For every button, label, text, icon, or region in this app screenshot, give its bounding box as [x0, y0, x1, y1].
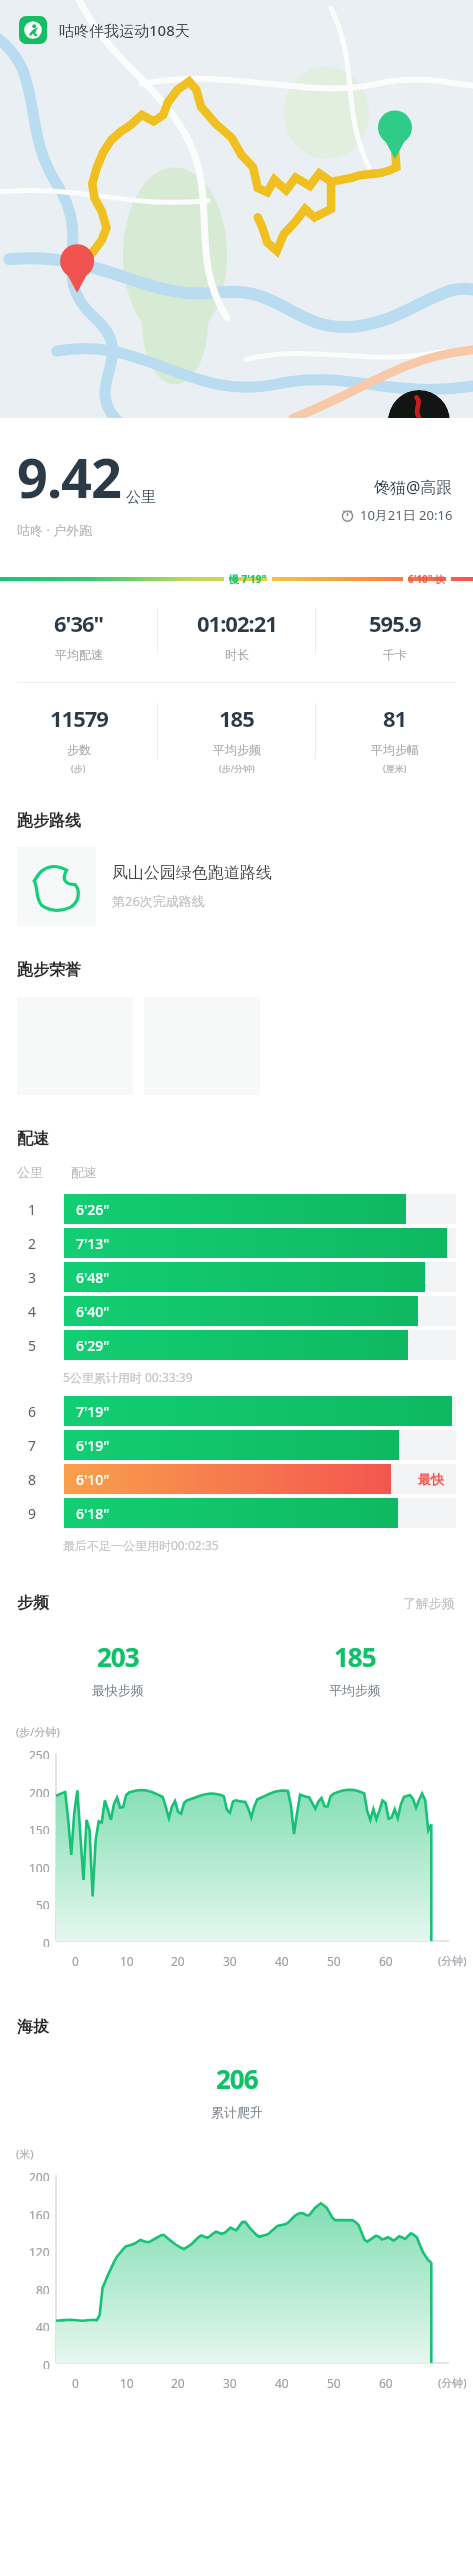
staticText: 第26次完成路线 [112, 892, 205, 910]
staticText: 馋猫@高跟 [374, 476, 453, 498]
staticText: (分钟) [438, 1953, 467, 1968]
staticText: 7'19" [76, 1402, 110, 1421]
staticText: 11579 [50, 703, 108, 733]
staticText: 了解步频 [403, 1595, 455, 1611]
button[interactable]: 了解步频 [403, 1595, 455, 1611]
staticText: 千卡 [383, 647, 407, 662]
staticText: 203 [97, 1639, 139, 1674]
staticText: 20 [171, 1953, 185, 1969]
staticText: 40 [275, 1953, 289, 1969]
staticText: 6'19" [76, 1436, 110, 1455]
staticText: (步/分钟) [219, 762, 255, 774]
staticText: 0 [43, 2357, 50, 2369]
staticText: 250 [29, 1747, 50, 1759]
staticText: 公里 [126, 488, 156, 507]
staticText: 595.9 [369, 608, 421, 638]
staticText: 30 [223, 2375, 237, 2391]
staticText: 最快 [418, 1471, 444, 1487]
staticText: 185 [334, 1639, 376, 1674]
staticText: 3 [28, 1268, 37, 1287]
staticText: 0 [72, 1953, 79, 1969]
staticText: 平均配速 [55, 647, 103, 662]
staticText: 6'26" [76, 1200, 110, 1219]
staticText: 0 [43, 1935, 50, 1947]
staticText: 20 [171, 2375, 185, 2391]
staticText: 7 [28, 1436, 37, 1455]
staticText: (米) [16, 2146, 34, 2161]
staticText: 6'18" [76, 1504, 110, 1523]
staticText: 累计爬升 [211, 2104, 263, 2120]
button[interactable]: 2 [17, 1226, 456, 1260]
staticText: 80 [36, 2282, 50, 2294]
staticText: 配速 [71, 1164, 97, 1180]
staticText: 30 [223, 1953, 237, 1969]
staticText: 81 [383, 703, 407, 733]
staticText: 咕咚 · 户外跑 [17, 521, 93, 539]
staticText: 10 [120, 2375, 134, 2391]
staticText: 120 [29, 2244, 50, 2256]
staticText: 步数 [67, 742, 91, 757]
staticText: 平均步频 [213, 742, 261, 757]
staticText: 最快步频 [92, 1682, 144, 1698]
staticText: 慢 7'19" [229, 572, 267, 586]
button[interactable]: 凤山公园绿色跑道路线 [17, 847, 456, 926]
staticText: 160 [29, 2207, 50, 2219]
button[interactable]: 7 [17, 1428, 456, 1462]
button[interactable]: User avatar [388, 390, 450, 452]
staticText: 时长 [225, 647, 249, 662]
staticText: 200 [29, 2169, 50, 2181]
staticText: 1 [28, 1200, 37, 1219]
staticText: 6'36" [54, 608, 104, 638]
button[interactable]: 3 [17, 1260, 456, 1294]
staticText: 0 [72, 2375, 79, 2391]
staticText: 40 [36, 2319, 50, 2331]
staticText: 平均步幅 [371, 742, 419, 757]
staticText: 50 [36, 1897, 50, 1909]
staticText: 50 [327, 1953, 341, 1969]
staticText: (步/分钟) [16, 1724, 60, 1739]
staticText: 海拔 [17, 2017, 49, 2037]
staticText: 60 [379, 1953, 393, 1969]
staticText: 100 [29, 1860, 50, 1872]
staticText: 60 [379, 2375, 393, 2391]
staticText: 150 [29, 1822, 50, 1834]
staticText: 6'10" [76, 1470, 110, 1489]
staticText: 206 [216, 2061, 258, 2096]
staticText: (厘米) [383, 762, 407, 774]
staticText: 平均步频 [329, 1682, 381, 1698]
button[interactable]: 8 [17, 1462, 456, 1496]
button[interactable]: 6 [17, 1394, 456, 1428]
staticText: 9 [28, 1504, 37, 1523]
button[interactable]: 4 [17, 1294, 456, 1328]
staticText: 咕咚伴我运动108天 [59, 20, 190, 40]
staticText: 8 [28, 1470, 37, 1489]
staticText: 185 [219, 703, 254, 733]
staticText: 10月21日 20:16 [360, 506, 453, 524]
staticText: 4 [28, 1302, 37, 1321]
button[interactable]: 咕咚伴我运动108天 [17, 14, 192, 46]
staticText: 5 [28, 1336, 37, 1355]
staticText: 50 [327, 2375, 341, 2391]
staticText: 跑步路线 [17, 811, 81, 831]
staticText: (步) [71, 762, 86, 774]
staticText: 6 [28, 1402, 37, 1421]
staticText: (分钟) [438, 2375, 467, 2390]
staticText: 跑步荣誉 [17, 960, 81, 980]
button[interactable]: 5 [17, 1328, 456, 1362]
staticText: 6'40" [76, 1302, 110, 1321]
staticText: 6'10" 快 [408, 572, 446, 586]
staticText: 公里 [17, 1164, 43, 1180]
button[interactable]: 1 [17, 1192, 456, 1226]
staticText: 10 [120, 1953, 134, 1969]
staticText: 凤山公园绿色跑道路线 [112, 863, 272, 883]
staticText: 01:02:21 [197, 608, 277, 638]
staticText: 7'13" [76, 1234, 110, 1253]
staticText: 配速 [17, 1129, 49, 1149]
staticText: 200 [29, 1785, 50, 1797]
button[interactable]: 9 [17, 1496, 456, 1530]
staticText: 步频 [17, 1593, 49, 1613]
staticText: 最后不足一公里用时00:02:35 [63, 1537, 219, 1553]
staticText: 6'29" [76, 1336, 110, 1355]
